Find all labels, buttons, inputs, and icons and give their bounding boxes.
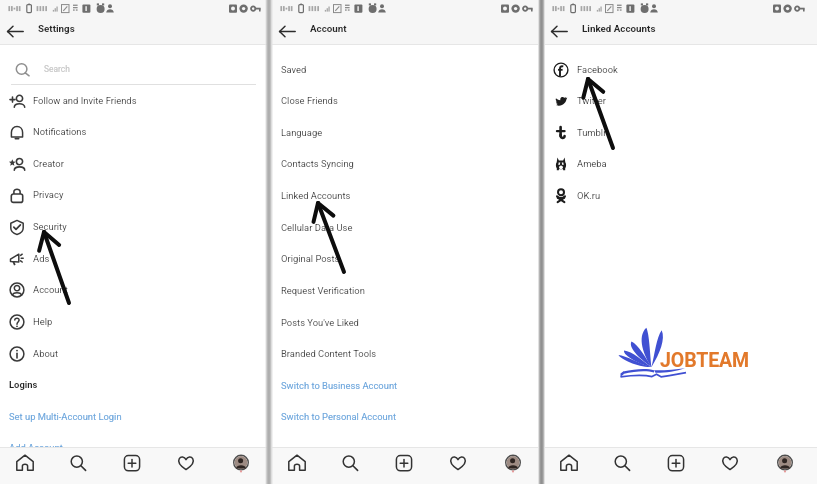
staticText: Privacy — [33, 189, 64, 200]
button[interactable]: Create — [390, 449, 418, 477]
button[interactable]: Twitter — [544, 85, 817, 116]
staticText: Ads — [33, 253, 50, 264]
button[interactable]: Activity — [172, 449, 200, 477]
staticText: Logins — [9, 379, 38, 390]
button[interactable]: Switch to Business Account — [272, 370, 539, 401]
staticText: Switch to Personal Account — [281, 411, 396, 422]
button[interactable]: Facebook — [544, 54, 817, 85]
staticText: Search — [44, 64, 70, 74]
staticText: Help — [33, 316, 53, 327]
button[interactable]: Create — [118, 449, 146, 477]
button[interactable]: Notifications — [0, 116, 267, 147]
button[interactable]: Branded Content Tools — [272, 338, 539, 369]
button[interactable]: Saved — [272, 54, 539, 85]
staticText: Linked Accounts — [582, 23, 656, 34]
staticText: Ameba — [577, 158, 607, 169]
staticText: Facebook — [577, 64, 618, 75]
staticText: Notifications — [33, 126, 87, 137]
button[interactable]: Search — [0, 55, 267, 84]
button[interactable]: Home — [555, 449, 583, 477]
button[interactable]: Activity — [444, 449, 472, 477]
button[interactable]: Back — [2, 20, 24, 42]
button[interactable]: Cellular Data Use — [272, 212, 539, 243]
button[interactable]: Ads — [0, 243, 267, 274]
staticText: Set up Multi-Account Login — [9, 411, 122, 422]
button[interactable]: Follow and Invite Friends — [0, 85, 267, 116]
button[interactable]: Tumblr — [544, 117, 817, 148]
button[interactable]: Search — [336, 449, 364, 477]
button[interactable]: Linked Accounts — [272, 180, 539, 211]
button[interactable]: OK.ru — [544, 180, 817, 211]
button[interactable]: Contacts Syncing — [272, 148, 539, 179]
button[interactable]: About — [0, 338, 267, 369]
button[interactable]: Back — [546, 20, 568, 42]
staticText: Posts You've Liked — [281, 317, 359, 328]
staticText: About — [33, 348, 59, 359]
staticText: OK.ru — [577, 190, 601, 201]
button[interactable]: Account — [0, 274, 267, 305]
button[interactable]: Create — [662, 449, 690, 477]
button[interactable]: Original Posts — [272, 243, 539, 274]
staticText: Contacts Syncing — [281, 158, 354, 169]
button[interactable]: Activity — [716, 449, 744, 477]
staticText: Saved — [281, 64, 307, 75]
staticText: Switch to Business Account — [281, 380, 398, 391]
staticText: Security — [33, 221, 67, 232]
button[interactable]: Back — [274, 20, 296, 42]
staticText: Account — [310, 23, 347, 34]
staticText: Tumblr — [577, 127, 607, 138]
button[interactable]: Home — [11, 449, 39, 477]
button[interactable]: Switch to Personal Account — [272, 401, 539, 432]
staticText: Linked Accounts — [281, 190, 351, 201]
staticText: Request Verification — [281, 285, 365, 296]
button[interactable]: Help — [0, 306, 267, 337]
staticText: JOBTEAM — [660, 349, 750, 372]
button[interactable]: Creator — [0, 148, 267, 179]
button[interactable]: Add Account — [0, 432, 267, 463]
button[interactable]: Home — [283, 449, 311, 477]
button[interactable]: Ameba — [544, 148, 817, 179]
staticText: Cellular Data Use — [281, 222, 353, 233]
button[interactable]: Profile — [499, 449, 527, 477]
staticText: Language — [281, 127, 323, 138]
button[interactable]: Close Friends — [272, 85, 539, 116]
button[interactable]: Search — [64, 449, 92, 477]
staticText: Add Account — [9, 442, 63, 453]
staticText: Twitter — [577, 95, 606, 106]
button[interactable]: Privacy — [0, 179, 267, 210]
staticText: Settings — [38, 23, 75, 34]
staticText: Close Friends — [281, 95, 338, 106]
button[interactable]: Request Verification — [272, 275, 539, 306]
button[interactable]: Set up Multi-Account Login — [0, 401, 267, 432]
staticText: Branded Content Tools — [281, 348, 377, 359]
staticText: Creator — [33, 158, 64, 169]
button[interactable]: Posts You've Liked — [272, 307, 539, 338]
button[interactable]: Logins — [0, 369, 267, 400]
staticText: Original Posts — [281, 253, 340, 264]
button[interactable]: Search — [608, 449, 636, 477]
button[interactable]: Language — [272, 117, 539, 148]
button[interactable]: Profile — [771, 449, 799, 477]
button[interactable]: Profile — [227, 449, 255, 477]
button[interactable]: Security — [0, 211, 267, 242]
staticText: Follow and Invite Friends — [33, 95, 137, 106]
staticText: Account — [33, 284, 68, 295]
